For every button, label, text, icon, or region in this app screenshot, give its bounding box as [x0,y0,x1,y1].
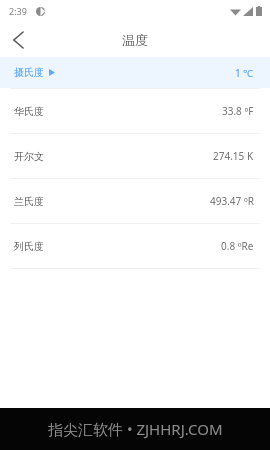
button[interactable]: 兰氏度 [0,179,270,223]
button[interactable]: 华氏度 [0,89,270,133]
staticText: 兰氏度 [14,195,44,208]
staticText: 摄氏度 [14,66,44,79]
staticText: 华氏度 [14,105,44,118]
staticText: 493.47 ºR [210,194,254,208]
staticText: 指尖汇软件 • ZJHHRJ.COM [48,419,223,439]
button[interactable]: Back [0,22,36,57]
staticText: 33.8 ºF [222,104,254,118]
staticText: 1 ℃ [235,66,254,80]
staticText: 2:39 [9,5,27,17]
staticText: 274.15 K [213,149,254,163]
button[interactable]: 列氏度 [0,224,270,268]
staticText: 温度 [122,32,148,48]
staticText: 0.8 ºRe [221,239,254,253]
staticText: 开尔文 [14,150,44,163]
staticText: 列氏度 [14,240,44,253]
button[interactable]: 开尔文 [0,134,270,178]
button[interactable]: 摄氏度 [0,57,270,88]
